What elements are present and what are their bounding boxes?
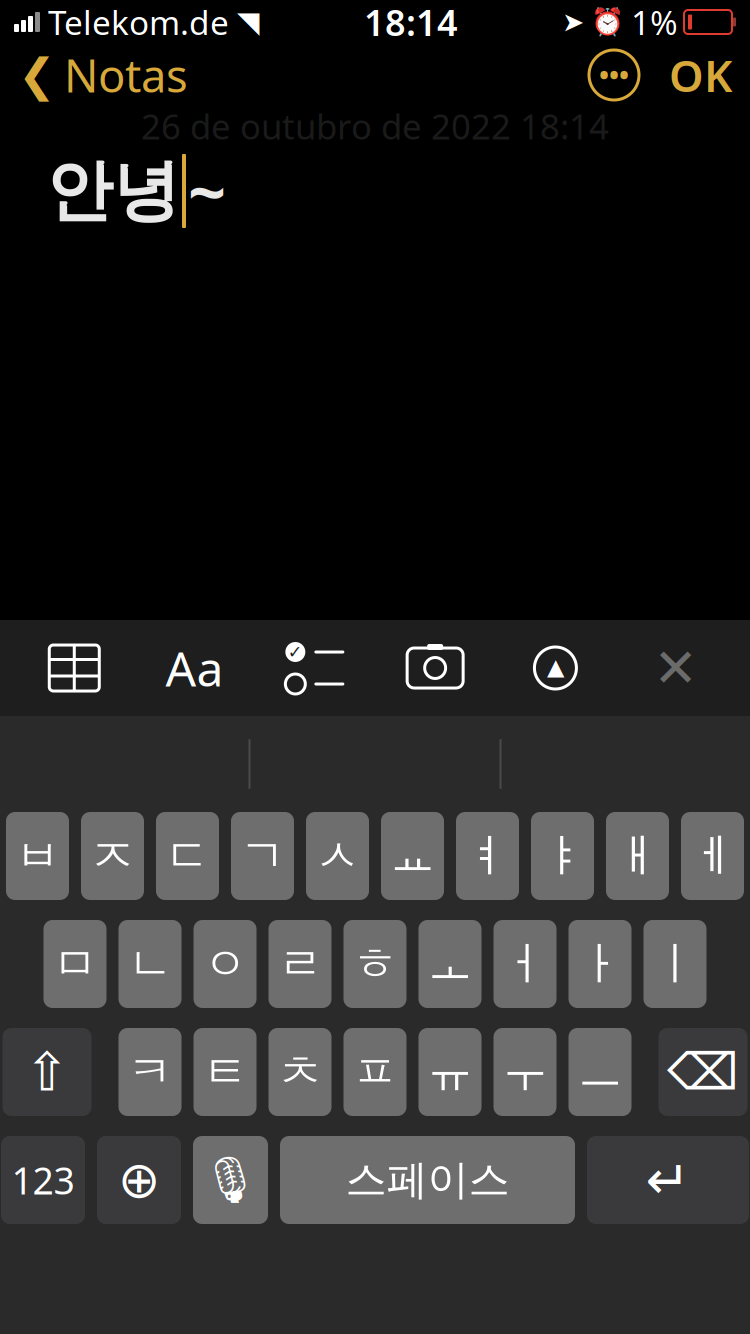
staticText: 안녕 — [46, 150, 180, 232]
button[interactable]: Dictation — [193, 1136, 268, 1224]
button[interactable]: ㅜ — [493, 1028, 556, 1116]
button[interactable]: ㅗ — [418, 920, 481, 1008]
staticText: ⊕ — [118, 1151, 160, 1209]
staticText: ㅐ — [615, 828, 660, 884]
staticText: 1% — [631, 0, 678, 44]
staticText: ㅜ — [502, 1044, 547, 1100]
staticText: ㅛ — [390, 828, 435, 884]
button[interactable]: ㄱ — [231, 812, 294, 900]
button[interactable]: ㅣ — [643, 920, 706, 1008]
button[interactable]: ㅊ — [268, 1028, 331, 1116]
button[interactable]: Hide keyboard — [630, 620, 722, 716]
button[interactable]: ㅋ — [118, 1028, 181, 1116]
staticText: ㅇ — [202, 936, 247, 992]
staticText: ㅏ — [577, 936, 622, 992]
staticText: ◥ — [237, 5, 260, 39]
staticText: ㅅ — [315, 828, 360, 884]
staticText: ❮ — [18, 49, 56, 101]
staticText: ㅈ — [90, 828, 135, 884]
staticText: Notas — [64, 45, 188, 105]
button[interactable]: Shift — [2, 1028, 91, 1116]
button[interactable]: ㅈ — [81, 812, 144, 900]
staticText: ㅋ — [127, 1044, 172, 1100]
button[interactable]: Format — [149, 620, 241, 716]
button[interactable]: ㄹ — [268, 920, 331, 1008]
staticText: ㅓ — [502, 936, 547, 992]
button[interactable]: ㅓ — [493, 920, 556, 1008]
button[interactable]: ㅍ — [343, 1028, 406, 1116]
button[interactable]: ㄴ — [118, 920, 181, 1008]
staticText: ㄹ — [277, 936, 322, 992]
staticText: ▲ — [547, 654, 564, 680]
button[interactable]: ㅌ — [193, 1028, 256, 1116]
staticText: ㅡ — [577, 1044, 622, 1100]
button[interactable]: 스페이스 — [280, 1136, 575, 1224]
staticText: ㅠ — [427, 1044, 472, 1100]
button[interactable]: More — [577, 44, 651, 106]
staticText: ㅍ — [352, 1044, 397, 1100]
staticText: ~ — [188, 147, 226, 235]
button[interactable]: Table — [28, 620, 120, 716]
staticText: 🎙 — [201, 1154, 259, 1206]
staticText: ⇧ — [24, 1042, 69, 1102]
staticText: ㅗ — [427, 936, 472, 992]
staticText: ㅕ — [465, 828, 510, 884]
button[interactable]: ㅂ — [6, 812, 69, 900]
staticText: ㄱ — [240, 828, 285, 884]
staticText: ㅊ — [277, 1044, 322, 1100]
staticText: ㅂ — [15, 828, 60, 884]
button[interactable]: ❮ — [0, 44, 206, 106]
button[interactable]: Return — [587, 1136, 749, 1224]
button[interactable]: ㅕ — [456, 812, 519, 900]
button[interactable]: ㅡ — [568, 1028, 631, 1116]
staticText: 스페이스 — [345, 1155, 509, 1205]
button[interactable]: ㅅ — [306, 812, 369, 900]
staticText: ㅌ — [202, 1044, 247, 1100]
button[interactable]: ㅔ — [681, 812, 744, 900]
button[interactable]: ㅛ — [381, 812, 444, 900]
staticText: 18:14 — [364, 0, 458, 46]
button[interactable]: ㅐ — [606, 812, 669, 900]
staticText: ㅔ — [690, 828, 735, 884]
staticText: OK — [669, 46, 732, 104]
button[interactable]: Next keyboard — [97, 1136, 181, 1224]
staticText: ••• — [599, 57, 629, 93]
button[interactable]: ㅇ — [193, 920, 256, 1008]
staticText: ㅑ — [540, 828, 585, 884]
staticText: ㄴ — [127, 936, 172, 992]
staticText: ✕ — [653, 638, 698, 698]
staticText: ↵ — [645, 1150, 690, 1210]
button[interactable]: ㅎ — [343, 920, 406, 1008]
button[interactable]: ㄷ — [156, 812, 219, 900]
button[interactable]: 123 — [1, 1136, 85, 1224]
staticText: ㅁ — [52, 936, 97, 992]
button[interactable]: Markup — [509, 620, 601, 716]
staticText: 123 — [11, 1155, 74, 1205]
button[interactable]: ㅁ — [43, 920, 106, 1008]
staticText: ㅎ — [352, 936, 397, 992]
staticText: ⌫ — [667, 1043, 739, 1101]
button[interactable]: ㅠ — [418, 1028, 481, 1116]
button[interactable]: Checklist — [269, 620, 361, 716]
staticText: Aa — [166, 636, 224, 700]
button[interactable]: ㅏ — [568, 920, 631, 1008]
button[interactable]: OK — [651, 44, 750, 106]
staticText: ➤ — [562, 7, 584, 37]
button[interactable]: Camera — [389, 620, 481, 716]
staticText: ⏰ — [591, 7, 624, 37]
button[interactable]: ㅑ — [531, 812, 594, 900]
button[interactable]: Delete — [658, 1028, 747, 1116]
staticText: ㄷ — [165, 828, 210, 884]
staticText: Telekom.de — [48, 0, 229, 44]
staticText: 26 de outubro de 2022 18:14 — [141, 103, 609, 149]
staticText: ✓ — [288, 642, 303, 662]
staticText: ㅣ — [652, 936, 697, 992]
